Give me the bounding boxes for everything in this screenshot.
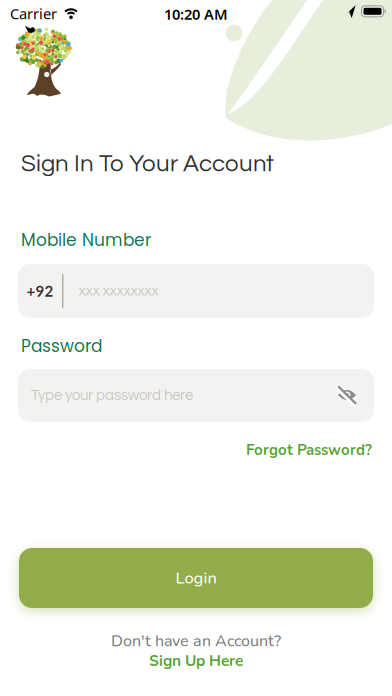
staticText: Password (21, 334, 102, 358)
staticText: +92 (26, 282, 53, 300)
staticText: Sign In To Your Account (21, 152, 274, 176)
staticText: Don't have an Account? (111, 630, 281, 652)
button[interactable]: Mobile Number (18, 264, 374, 318)
staticText: Carrier (10, 4, 57, 23)
staticText: Type your password here (31, 388, 193, 403)
staticText: Sign Up Here (149, 650, 243, 672)
button[interactable]: Sign Up Here (149, 651, 243, 671)
staticText: xxx xxxxxxxx (78, 283, 158, 299)
button[interactable]: Show password (335, 381, 359, 409)
button[interactable]: Login (19, 548, 373, 608)
staticText: Forgot Password? (246, 440, 372, 460)
staticText: Mobile Number (21, 228, 151, 252)
staticText: 10:20 AM (164, 4, 228, 24)
button[interactable]: Forgot Password? (246, 440, 372, 460)
button[interactable]: Password (18, 369, 374, 422)
staticText: Login (175, 567, 216, 589)
